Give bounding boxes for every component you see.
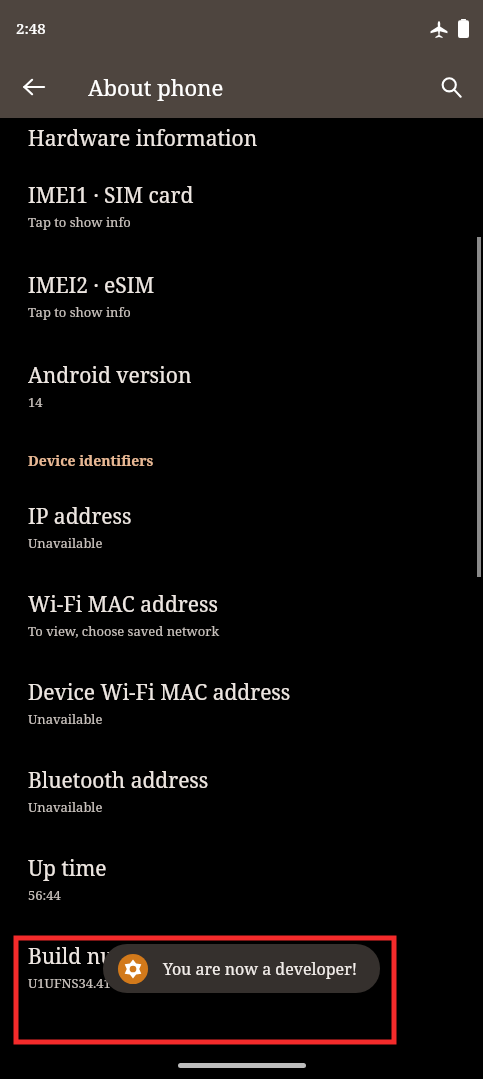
staticText: Wi-Fi MAC address xyxy=(28,590,218,619)
staticText: U1UFNS34.41-98-3-19 xyxy=(28,974,160,992)
staticText: IMEI2 · eSIM xyxy=(28,271,155,300)
staticText: Tap to show info xyxy=(28,303,131,321)
button[interactable]: Android version xyxy=(0,361,483,411)
staticText: Up time xyxy=(28,854,107,883)
button[interactable]: IMEI2 · eSIM xyxy=(0,271,483,321)
staticText: Build number xyxy=(28,942,168,971)
button[interactable]: Hardware information xyxy=(0,118,483,159)
staticText: 14 xyxy=(28,393,43,411)
staticText: Tap to show info xyxy=(28,213,131,231)
staticText: About phone xyxy=(88,72,224,102)
staticText: Device Wi-Fi MAC address xyxy=(28,678,291,707)
staticText: Bluetooth address xyxy=(28,766,209,795)
staticText: You are now a developer! xyxy=(163,958,358,980)
button[interactable]: Device Wi-Fi MAC address xyxy=(0,678,483,728)
staticText: Hardware information xyxy=(28,124,258,153)
button[interactable]: IP address xyxy=(0,502,483,552)
staticText: To view, choose saved network xyxy=(28,622,219,640)
staticText: Android version xyxy=(28,361,192,390)
staticText: 56:44 xyxy=(28,886,61,904)
staticText: Unavailable xyxy=(28,534,103,552)
staticText: IMEI1 · SIM card xyxy=(28,181,194,210)
button[interactable]: Bluetooth address xyxy=(0,766,483,816)
staticText: Device identifiers xyxy=(28,451,154,470)
button[interactable]: IMEI1 · SIM card xyxy=(0,181,483,231)
staticText: Unavailable xyxy=(28,710,103,728)
button[interactable]: Wi-Fi MAC address xyxy=(0,590,483,640)
button[interactable]: Build number xyxy=(0,942,483,992)
button[interactable]: Back xyxy=(10,63,58,111)
button[interactable]: Search xyxy=(427,63,475,111)
staticText: Unavailable xyxy=(28,798,103,816)
button[interactable]: Up time xyxy=(0,854,483,904)
staticText: 2:48 xyxy=(16,18,46,38)
staticText: IP address xyxy=(28,502,132,531)
